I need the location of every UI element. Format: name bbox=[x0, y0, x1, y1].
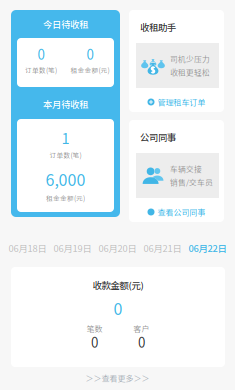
button[interactable]: 查看公司同事 bbox=[129, 202, 224, 222]
staticText: 司机少压力 bbox=[170, 53, 210, 64]
staticText: 06月20日 bbox=[98, 241, 136, 255]
button[interactable]: 06月20日 bbox=[95, 241, 140, 255]
staticText: 1 bbox=[61, 127, 69, 148]
button[interactable]: 06月19日 bbox=[50, 241, 95, 255]
staticText: 收租助手 bbox=[140, 20, 176, 34]
staticText: 06月19日 bbox=[53, 241, 91, 255]
staticText: 06月18日 bbox=[8, 241, 46, 255]
staticText: 06月21日 bbox=[143, 241, 181, 255]
staticText: 0 bbox=[113, 296, 122, 320]
staticText: 公司同事 bbox=[140, 130, 176, 144]
staticText: 笔数 bbox=[86, 323, 102, 334]
staticText: ＞＞查看更多＞＞ bbox=[85, 372, 149, 384]
staticText: 6,000 bbox=[45, 167, 85, 191]
staticText: 租金金额(元) bbox=[70, 65, 109, 75]
staticText: 车辆交接 bbox=[170, 163, 202, 174]
button[interactable]: ＞＞查看更多＞＞ bbox=[0, 371, 235, 385]
button[interactable]: 06月22日 bbox=[185, 241, 230, 255]
staticText: 收租更轻松 bbox=[170, 66, 210, 78]
staticText: 06月22日 bbox=[188, 241, 226, 255]
staticText: 管理租车订单 bbox=[157, 96, 205, 108]
staticText: 收款金额(元) bbox=[92, 278, 143, 292]
button[interactable]: 06月21日 bbox=[140, 241, 185, 255]
staticText: 今日待收租 bbox=[43, 17, 88, 31]
staticText: 0 bbox=[138, 332, 145, 352]
staticText: 客户 bbox=[133, 323, 149, 334]
staticText: 0 bbox=[86, 44, 93, 64]
staticText: 查看公司同事 bbox=[157, 206, 205, 218]
staticText: 订单数(笔) bbox=[49, 150, 81, 160]
button[interactable]: 06月18日 bbox=[5, 241, 50, 255]
staticText: 0 bbox=[37, 44, 44, 64]
button[interactable]: 管理租车订单 bbox=[129, 92, 224, 112]
staticText: 订单数(笔) bbox=[25, 65, 57, 75]
staticText: 租金金额(元) bbox=[46, 193, 85, 203]
staticText: 0 bbox=[91, 332, 98, 352]
staticText: 销售/交车员 bbox=[170, 176, 213, 188]
staticText: 本月待收租 bbox=[43, 97, 88, 111]
